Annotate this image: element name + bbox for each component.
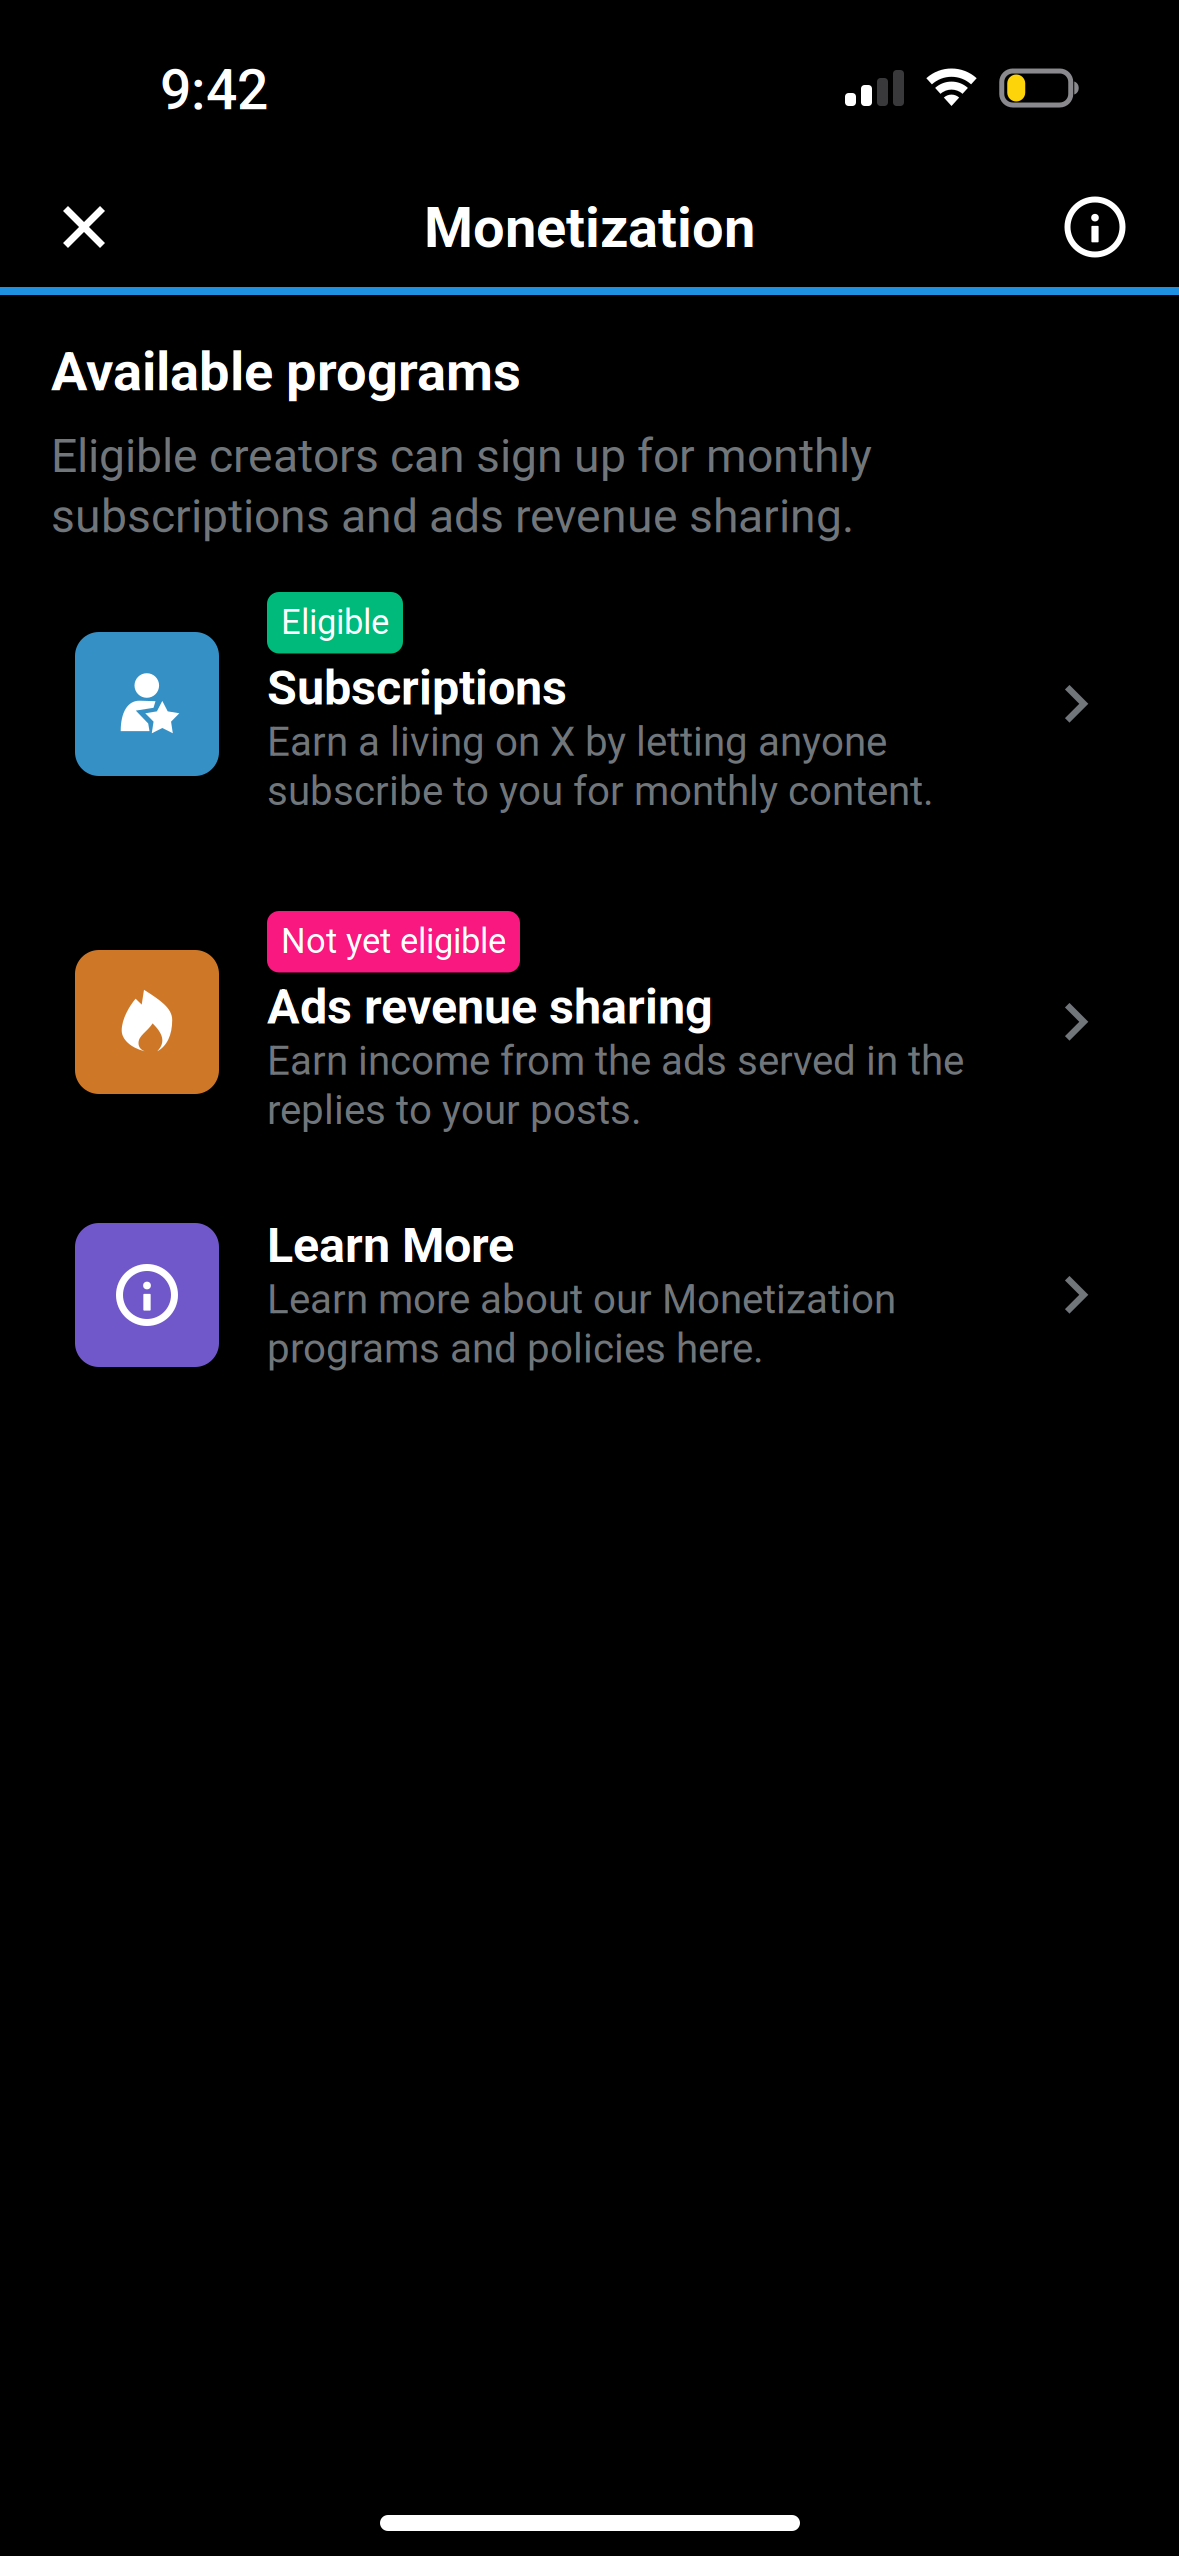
staticText: Monetization: [424, 195, 755, 261]
staticText: Not yet eligible: [281, 921, 506, 961]
staticText: 9:42: [160, 58, 268, 123]
staticText: Subscriptions: [267, 659, 567, 716]
staticText: Learn more about our Monetization progra…: [267, 1276, 896, 1372]
button[interactable]: Not yet eligible: [0, 891, 1179, 1153]
staticText: Available programs: [51, 340, 521, 404]
button[interactable]: Learn More: [0, 1197, 1179, 1397]
staticText: Earn income from the ads served in the r…: [267, 1037, 964, 1134]
staticText: Ads revenue sharing: [267, 978, 713, 1035]
button[interactable]: About monetization: [1035, 171, 1155, 283]
staticText: Earn a living on X by letting anyone sub…: [267, 718, 934, 815]
button[interactable]: Close: [24, 171, 144, 283]
staticText: Eligible: [281, 602, 389, 642]
staticText: Eligible creators can sign up for monthl…: [51, 429, 872, 543]
button[interactable]: Eligible: [0, 572, 1179, 840]
staticText: Learn More: [267, 1217, 514, 1274]
